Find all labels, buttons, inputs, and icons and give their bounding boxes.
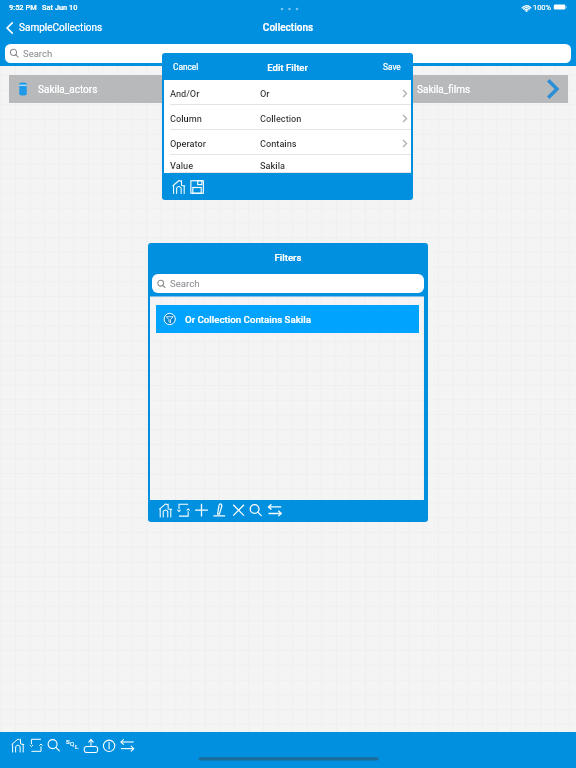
button[interactable]: Home [172,180,186,194]
staticText: Contains [260,138,297,149]
button[interactable]: Add filter [194,502,210,518]
staticText: Sakila_actors [38,84,98,96]
staticText: 9:52 PM Sat Jun 10 [9,3,78,12]
button[interactable]: Column [164,105,411,130]
button[interactable]: Operator [164,130,411,155]
staticText: Collection [260,113,302,124]
button[interactable]: Sakila_actors [9,75,568,103]
staticText: Q [70,740,75,747]
button[interactable]: Search [44,736,62,754]
button[interactable]: Home [159,502,175,518]
staticText: Or Collection Contains Sakila [185,314,311,325]
staticText: Sakila [260,160,285,171]
button[interactable]: Cancel [173,62,199,72]
staticText: S [66,738,70,745]
button[interactable]: Delete filter [231,502,247,518]
button[interactable]: Refresh [176,502,192,518]
staticText: Collections [0,22,576,34]
staticText: 100% [533,3,551,12]
button[interactable]: Settings [119,736,137,754]
button[interactable]: Info [100,736,118,754]
button[interactable]: And/Or [164,80,411,105]
button[interactable]: Upload [82,736,100,754]
button[interactable]: Edit filter [212,502,228,518]
button[interactable]: Value [164,155,411,173]
staticText: Search [23,48,53,59]
button[interactable]: Search filters [247,502,263,518]
button[interactable]: Save [383,62,401,72]
staticText: SampleCollections [19,22,103,34]
staticText: And/Or [170,88,200,99]
staticText: Or [260,88,270,99]
staticText: L [75,743,79,750]
button[interactable]: Back to SampleCollections [5,18,103,38]
button[interactable]: Home [9,736,27,754]
staticText: Column [170,113,202,124]
staticText: Value [170,160,194,171]
button[interactable]: Search [5,44,571,63]
button[interactable]: Sort [267,502,283,518]
button[interactable]: Refresh [27,736,45,754]
staticText: Sakila_films [417,84,471,96]
staticText: Filters [148,252,428,263]
staticText: Operator [170,138,206,149]
button[interactable]: Save filter [190,180,204,194]
button[interactable]: Search [152,274,424,293]
button[interactable]: SQL [63,736,81,754]
button[interactable]: Or Collection Contains Sakila [156,305,419,333]
staticText: Edit Filter [162,62,413,73]
staticText: Search [170,278,200,289]
